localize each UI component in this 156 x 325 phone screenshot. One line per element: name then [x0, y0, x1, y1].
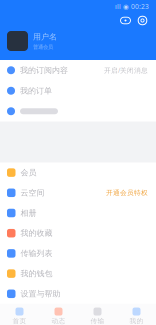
button[interactable]: 相册 — [0, 203, 156, 223]
button[interactable]: Settings — [137, 15, 148, 26]
button[interactable]: 动态 — [39, 304, 78, 325]
staticText: 传输 — [90, 317, 104, 325]
button[interactable]: 用户名 — [0, 28, 156, 54]
staticText: ıll ◉ 00:23 — [115, 2, 149, 11]
staticText: 普通会员 — [33, 44, 53, 50]
staticText: 我的订阅内容 — [20, 65, 68, 75]
button[interactable]: 会员 — [0, 162, 156, 183]
staticText: 我的收藏 — [20, 228, 52, 238]
staticText: 传输列表 — [20, 248, 52, 258]
staticText: 开通会员特权 — [106, 189, 148, 197]
button[interactable]: 设置与帮助 — [0, 284, 156, 304]
button[interactable]: 传输 — [78, 304, 117, 325]
button[interactable]: 首页 — [0, 304, 39, 325]
staticText: 我的 — [129, 317, 143, 325]
staticText: 会员 — [20, 168, 36, 177]
staticText: 动态 — [51, 317, 65, 325]
staticText: 我的钱包 — [20, 269, 52, 278]
staticText: 用户名 — [33, 32, 57, 42]
button[interactable]: 我的订单 — [0, 80, 156, 101]
button[interactable] — [0, 101, 156, 121]
button[interactable]: 我的 — [117, 304, 156, 325]
button[interactable]: 传输列表 — [0, 243, 156, 263]
staticText: 首页 — [12, 317, 26, 325]
staticText: 相册 — [20, 208, 36, 218]
button[interactable]: 云空间 — [0, 183, 156, 203]
button[interactable]: Cloud — [120, 15, 131, 26]
button[interactable]: 我的收藏 — [0, 223, 156, 243]
button[interactable]: 我的订阅内容 — [0, 60, 156, 80]
staticText: 开启/关闭消息 — [104, 66, 148, 75]
staticText: 设置与帮助 — [20, 289, 60, 299]
button[interactable]: 我的钱包 — [0, 263, 156, 284]
staticText: 我的订单 — [20, 86, 52, 96]
staticText: 云空间 — [20, 188, 44, 198]
